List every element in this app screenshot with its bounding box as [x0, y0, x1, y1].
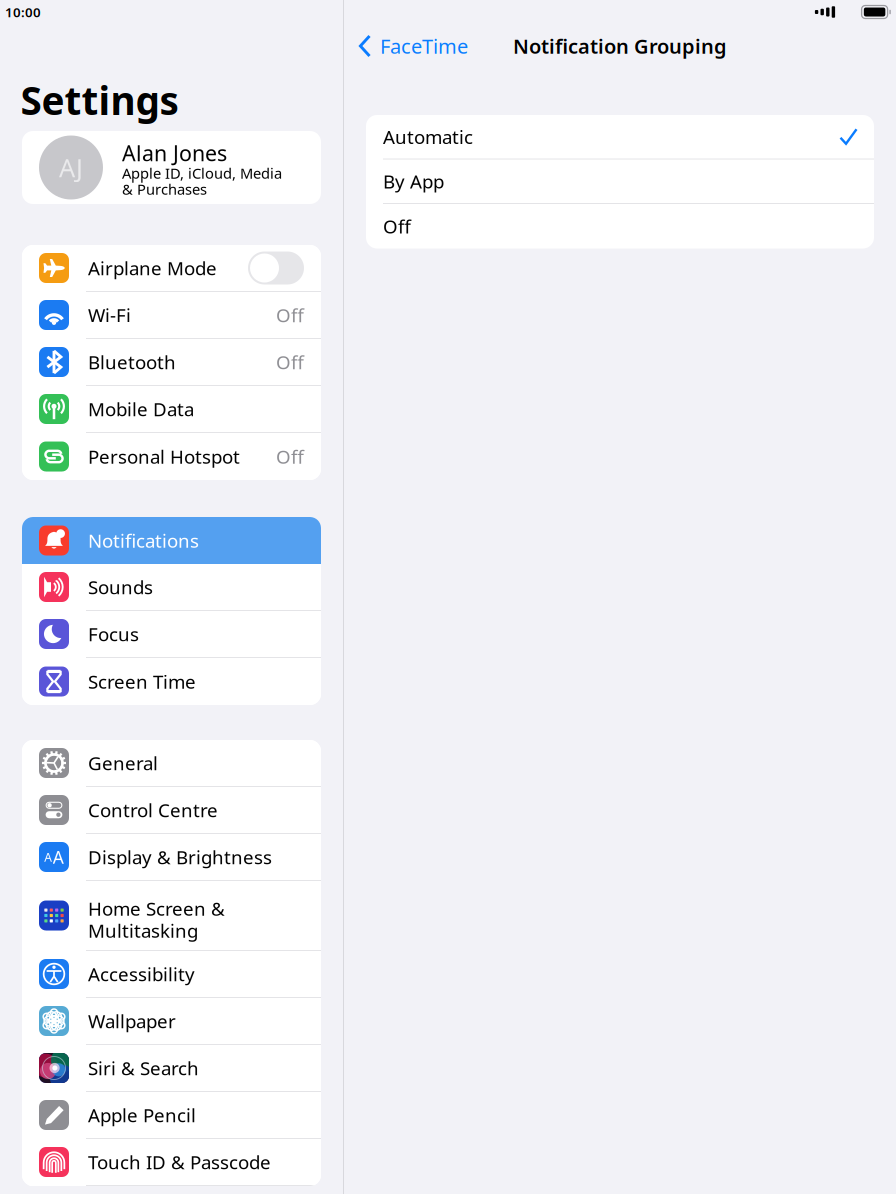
button[interactable]: Wi-Fi — [22, 292, 321, 339]
staticText: Focus — [88, 622, 139, 646]
button[interactable]: Personal Hotspot — [22, 433, 321, 480]
button[interactable]: Touch ID & Passcode — [22, 1139, 321, 1186]
button[interactable]: Airplane Mode — [22, 245, 321, 292]
staticText: Touch ID & Passcode — [88, 1150, 271, 1174]
staticText: Bluetooth — [88, 350, 176, 374]
staticText: Display & Brightness — [88, 845, 272, 869]
button[interactable]: Automatic — [366, 115, 874, 159]
staticText: Off — [276, 303, 304, 327]
staticText: A — [44, 849, 52, 865]
button[interactable]: Off — [366, 204, 874, 248]
button[interactable]: By App — [366, 159, 874, 204]
staticText: 10:00 — [5, 3, 41, 21]
button[interactable]: General — [22, 740, 321, 787]
button[interactable]: Sounds — [22, 564, 321, 611]
staticText: Automatic — [383, 124, 473, 149]
staticText: Wi-Fi — [88, 303, 131, 327]
staticText: Settings — [20, 74, 178, 126]
staticText: Mobile Data — [88, 397, 194, 421]
staticText: Sounds — [88, 575, 153, 599]
staticText: Notifications — [88, 528, 199, 553]
staticText: Off — [276, 350, 304, 374]
staticText: Airplane Mode — [88, 256, 217, 280]
button[interactable]: Accessibility — [22, 951, 321, 998]
staticText: Off — [276, 444, 304, 469]
button[interactable]: AJ — [22, 131, 321, 204]
button[interactable]: A — [22, 834, 321, 881]
staticText: Apple Pencil — [88, 1103, 196, 1127]
staticText: Accessibility — [88, 962, 195, 986]
button[interactable]: Mobile Data — [22, 386, 321, 433]
staticText: A — [53, 845, 64, 868]
staticText: Off — [383, 214, 411, 239]
staticText: Notification Grouping — [513, 33, 727, 59]
staticText: AJ — [59, 151, 83, 184]
staticText: FaceTime — [380, 33, 468, 59]
staticText: & Purchases — [122, 179, 207, 199]
button[interactable]: Focus — [22, 611, 321, 658]
button[interactable]: Bluetooth — [22, 339, 321, 386]
button[interactable]: Home Screen & — [22, 881, 321, 951]
staticText: Home Screen & — [88, 896, 225, 921]
staticText: Wallpaper — [88, 1009, 176, 1033]
staticText: Multitasking — [88, 918, 198, 943]
staticText: Alan Jones — [122, 139, 227, 167]
staticText: Control Centre — [88, 798, 218, 822]
staticText: Siri & Search — [88, 1056, 199, 1080]
staticText: Apple ID, iCloud, Media — [122, 163, 282, 183]
button[interactable]: Apple Pencil — [22, 1092, 321, 1139]
button[interactable]: Siri & Search — [22, 1045, 321, 1092]
staticText: General — [88, 751, 158, 775]
staticText: Screen Time — [88, 669, 196, 694]
staticText: Personal Hotspot — [88, 444, 240, 469]
button[interactable]: FaceTime — [344, 28, 483, 64]
button[interactable]: Wallpaper — [22, 998, 321, 1045]
button[interactable]: Control Centre — [22, 787, 321, 834]
button[interactable]: Notifications — [22, 517, 321, 564]
staticText: By App — [383, 169, 444, 194]
button[interactable]: Screen Time — [22, 658, 321, 705]
